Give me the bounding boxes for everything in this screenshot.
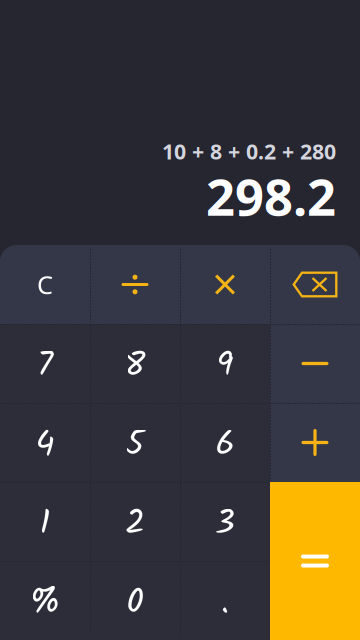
staticText: .	[221, 576, 229, 631]
button[interactable]: 3	[180, 482, 270, 561]
button[interactable]: 8	[90, 324, 180, 403]
button[interactable]: Divide	[90, 245, 180, 324]
button[interactable]: Backspace	[270, 245, 360, 324]
button[interactable]: .	[180, 561, 270, 640]
staticText: 4	[35, 418, 54, 473]
staticText: 3	[215, 497, 235, 552]
button[interactable]: Plus	[270, 403, 360, 482]
staticText: 5	[125, 418, 144, 473]
staticText: 6	[215, 418, 234, 473]
button[interactable]: 7	[0, 324, 90, 403]
button[interactable]: C	[0, 245, 90, 324]
staticText: 9	[216, 339, 233, 394]
button[interactable]: Multiply	[180, 245, 270, 324]
button[interactable]: 5	[90, 403, 180, 482]
button[interactable]: 1	[0, 482, 90, 561]
staticText: %	[29, 576, 60, 631]
staticText: 2	[125, 497, 145, 552]
staticText: 7	[37, 339, 53, 394]
button[interactable]: Minus	[270, 324, 360, 403]
button[interactable]: 0	[90, 561, 180, 640]
staticText: 0	[126, 576, 143, 631]
button[interactable]: 4	[0, 403, 90, 482]
button[interactable]: 2	[90, 482, 180, 561]
staticText: 1	[39, 497, 50, 552]
staticText: 298.2	[206, 162, 336, 230]
button[interactable]: 9	[180, 324, 270, 403]
staticText: C	[37, 268, 53, 301]
staticText: 8	[124, 339, 145, 394]
button[interactable]: %	[0, 561, 90, 640]
staticText: 10 + 8 + 0.2 + 280	[162, 137, 336, 165]
button[interactable]: Equals	[270, 482, 360, 640]
button[interactable]: 6	[180, 403, 270, 482]
